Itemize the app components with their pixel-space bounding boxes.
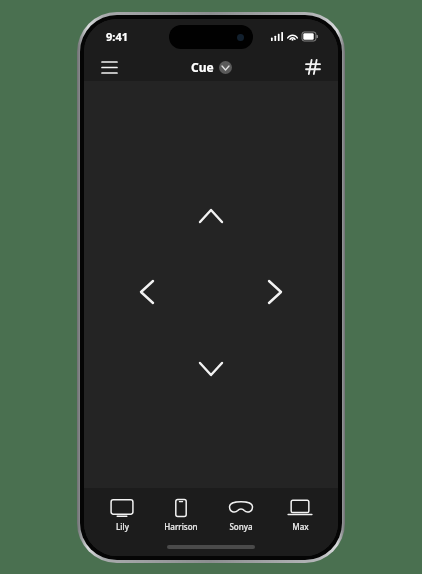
button[interactable]: Right xyxy=(252,269,298,315)
button[interactable]: Max xyxy=(273,496,327,534)
button[interactable]: Left xyxy=(124,269,170,315)
button[interactable]: Down xyxy=(188,346,234,392)
staticText: Harrison xyxy=(164,521,198,532)
button[interactable]: Cue xyxy=(185,57,238,77)
button[interactable]: Keypad xyxy=(298,53,328,81)
button[interactable]: Harrison xyxy=(154,496,208,534)
staticText: Lily xyxy=(116,521,129,532)
button[interactable]: Sonya xyxy=(214,496,268,534)
staticText: Cue xyxy=(191,59,214,75)
staticText: 9:41 xyxy=(106,29,128,44)
button[interactable]: Menu xyxy=(94,53,124,81)
button[interactable]: Up xyxy=(188,193,234,239)
staticText: Max xyxy=(292,521,309,532)
staticText: Sonya xyxy=(229,521,253,532)
button[interactable]: Lily xyxy=(95,496,149,534)
